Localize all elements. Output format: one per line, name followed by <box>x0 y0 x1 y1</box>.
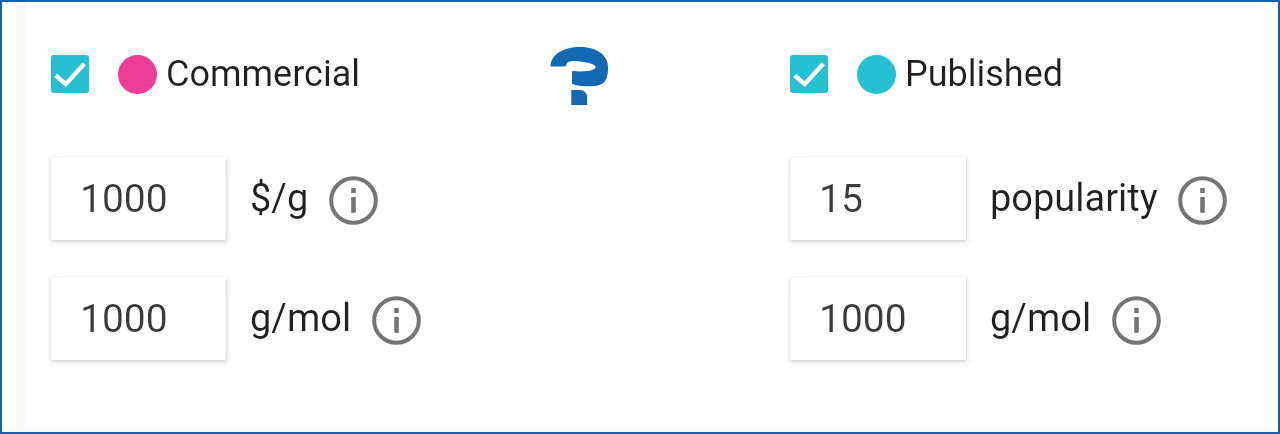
button[interactable]: Info <box>329 176 378 225</box>
button[interactable]: 15 <box>790 157 966 240</box>
staticText: Commercial <box>166 53 360 95</box>
button[interactable]: 1000 <box>790 277 966 360</box>
staticText: 1000 <box>80 176 168 222</box>
button[interactable]: Checkbox checked <box>51 55 89 93</box>
button[interactable]: Help <box>550 47 608 105</box>
button[interactable]: Info <box>372 296 421 345</box>
button[interactable]: Checkbox checked <box>790 55 828 93</box>
staticText: 1000 <box>819 296 907 342</box>
button[interactable]: Info <box>1112 296 1161 345</box>
staticText: g/mol <box>250 296 352 341</box>
button[interactable]: 1000 <box>51 157 226 240</box>
staticText: g/mol <box>990 296 1092 341</box>
button[interactable]: 1000 <box>51 277 226 360</box>
staticText: 1000 <box>80 296 168 342</box>
button[interactable]: Info <box>1178 176 1227 225</box>
staticText: $/g <box>250 176 309 221</box>
staticText: 15 <box>819 176 863 222</box>
staticText: Published <box>905 53 1064 95</box>
staticText: popularity <box>990 176 1158 221</box>
